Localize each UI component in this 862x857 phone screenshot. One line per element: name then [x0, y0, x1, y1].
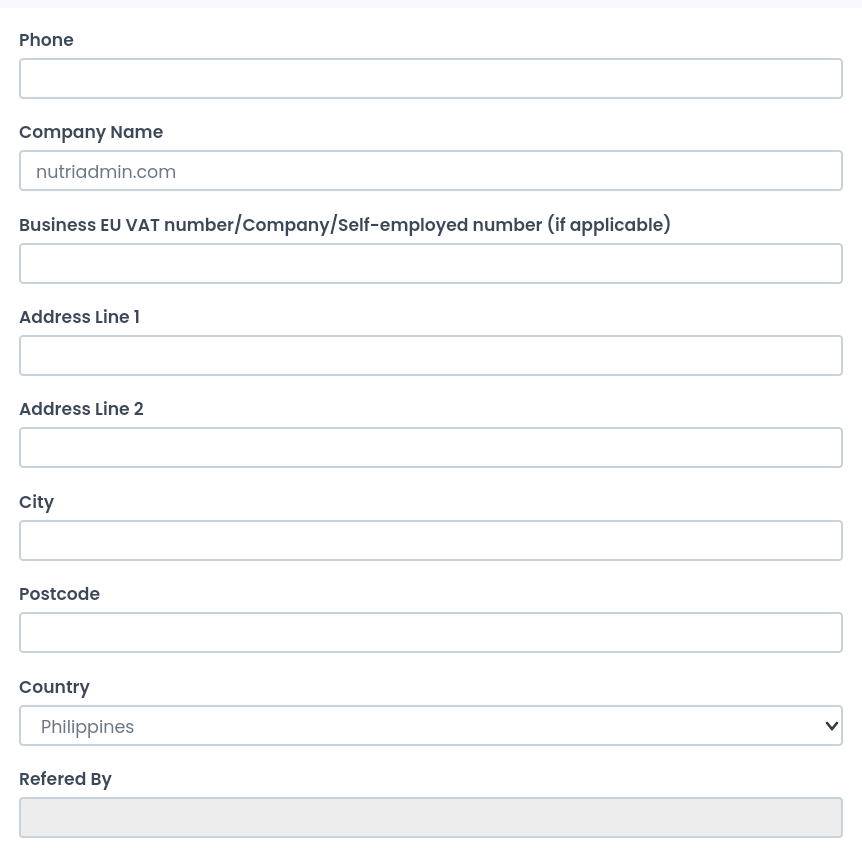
button[interactable]: Address Line 1 input field [19, 335, 843, 376]
staticText: nutriadmin.com [36, 160, 177, 185]
button: Refered By, disabled [19, 797, 843, 838]
staticText: Address Line 1 [19, 305, 140, 329]
staticText: City [19, 490, 55, 514]
staticText: Business EU VAT number/Company/Self-empl… [19, 213, 672, 237]
staticText: Phone [19, 28, 74, 52]
button[interactable]: Phone input field [19, 58, 843, 99]
button[interactable]: Company Name input field [19, 150, 843, 191]
staticText: Postcode [19, 582, 101, 606]
staticText: Country [19, 675, 90, 699]
button[interactable]: Country selector, Philippines [19, 705, 843, 746]
staticText: Address Line 2 [19, 397, 144, 421]
button[interactable]: Business EU VAT number/Company/Self-empl… [19, 243, 843, 284]
button[interactable]: City input field [19, 520, 843, 561]
button[interactable]: Postcode input field [19, 612, 843, 653]
button[interactable]: Address Line 2 input field [19, 427, 843, 468]
staticText: Philippines [41, 715, 135, 740]
staticText: Company Name [19, 120, 164, 144]
staticText: Refered By [19, 767, 112, 791]
